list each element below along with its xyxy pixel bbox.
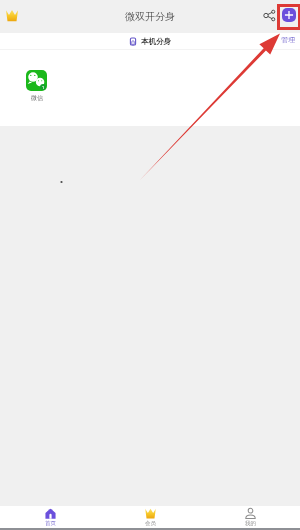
staticText: 管理 [281,35,295,44]
button[interactable]: 管理 [279,34,297,45]
button[interactable]: Share [262,8,277,23]
button[interactable]: Add [281,7,297,23]
staticText: 会员 [145,520,156,527]
staticText: 首页 [45,520,56,527]
staticText: 微信 [31,94,43,102]
staticText: 本机分身 [141,37,171,46]
staticText: 1 [42,85,45,90]
button[interactable]: 本机分身 [130,37,171,46]
staticText: 我的 [245,520,256,527]
button[interactable]: VIP [4,9,20,25]
button[interactable]: 会员 [100,506,200,528]
button[interactable]: 1 [26,70,47,91]
staticText: 微双开分身 [125,10,175,23]
button[interactable]: 我的 [200,506,300,528]
button[interactable]: 首页 [0,506,100,528]
